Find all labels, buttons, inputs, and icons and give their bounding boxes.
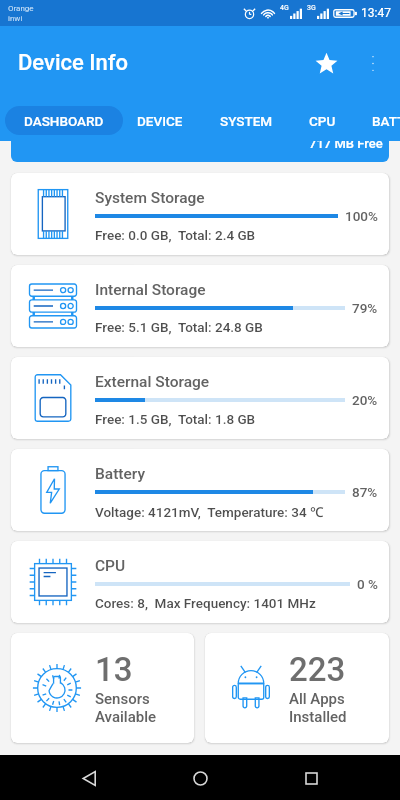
button[interactable]: System Storage: [11, 173, 389, 255]
staticText: Internal Storage: [95, 281, 206, 299]
staticText: BATTERY: [372, 113, 400, 129]
staticText: DEVICE: [137, 113, 183, 129]
button[interactable]: Recent apps: [289, 756, 333, 800]
staticText: 20%: [352, 392, 378, 408]
staticText: Device Info: [18, 50, 128, 76]
staticText: 13: [95, 650, 133, 689]
staticText: All Apps: [289, 690, 345, 708]
button[interactable]: External Storage: [11, 357, 389, 439]
staticText: CPU: [309, 113, 336, 129]
staticText: Voltage: 4121mV, Temperature: 34 ℃: [95, 503, 324, 521]
staticText: SYSTEM: [220, 113, 273, 129]
staticText: Free: 1.5 GB, Total: 1.8 GB: [95, 411, 256, 427]
staticText: Available: [95, 708, 157, 726]
staticText: External Storage: [95, 373, 210, 391]
button[interactable]: DEVICE: [123, 106, 197, 135]
staticText: 717 MB Free: [309, 136, 383, 151]
button[interactable]: Favorite: [303, 40, 349, 86]
button[interactable]: SYSTEM: [203, 106, 289, 135]
button[interactable]: Home: [178, 756, 222, 800]
staticText: 13:47: [361, 6, 391, 20]
staticText: 87%: [352, 484, 378, 500]
staticText: System Storage: [95, 189, 205, 207]
button[interactable]: 717 MB Free: [11, 100, 389, 162]
button[interactable]: Back: [67, 756, 111, 800]
staticText: 79%: [352, 300, 378, 316]
staticText: DASHBOARD: [24, 113, 104, 129]
staticText: Orange: [8, 4, 34, 13]
staticText: Installed: [289, 708, 347, 726]
button[interactable]: CPU: [11, 541, 389, 623]
button[interactable]: CPU: [295, 106, 350, 135]
staticText: Free: 5.1 GB, Total: 24.8 GB: [95, 319, 263, 335]
staticText: 100%: [345, 208, 378, 224]
staticText: Battery: [95, 465, 145, 483]
button[interactable]: More options: [353, 43, 393, 83]
staticText: inwi: [8, 14, 23, 23]
staticText: Sensors: [95, 690, 150, 708]
staticText: 4G: [280, 4, 289, 12]
button[interactable]: Battery: [11, 449, 389, 531]
button[interactable]: BATTERY: [356, 106, 400, 135]
staticText: 0 %: [357, 576, 378, 592]
button[interactable]: DASHBOARD: [5, 106, 123, 135]
button[interactable]: 13: [11, 633, 194, 743]
button[interactable]: Internal Storage: [11, 265, 389, 347]
staticText: CPU: [95, 557, 126, 575]
staticText: Cores: 8, Max Frequency: 1401 MHz: [95, 595, 316, 611]
staticText: 223: [289, 650, 346, 689]
staticText: Free: 0.0 GB, Total: 2.4 GB: [95, 227, 256, 243]
button[interactable]: 223: [205, 633, 389, 743]
staticText: 3G: [307, 4, 316, 12]
